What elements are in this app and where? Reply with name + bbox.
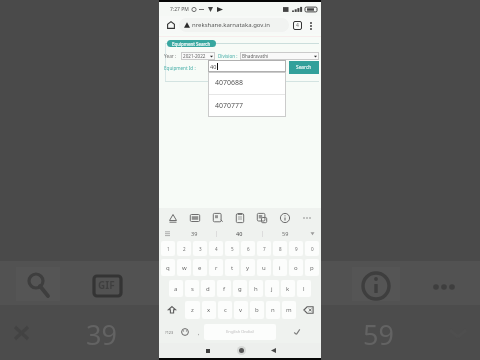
button[interactable]: x <box>202 301 216 319</box>
button[interactable]: 4 <box>209 241 223 256</box>
button[interactable]: v <box>234 301 248 319</box>
staticText: 2021-2022 <box>183 53 206 59</box>
button[interactable]: m <box>282 301 296 319</box>
button[interactable]: More <box>299 210 315 226</box>
staticText: h <box>254 285 258 293</box>
button[interactable]: Back <box>266 343 281 358</box>
button[interactable]: 2021-2022 <box>183 52 213 60</box>
button[interactable]: w <box>177 259 191 276</box>
button[interactable]: nrekshane.karnataka.gov.in <box>179 18 289 32</box>
button[interactable]: Bhadravathi <box>242 52 317 60</box>
button[interactable]: 4070777 <box>208 95 286 117</box>
button[interactable]: 5 <box>225 241 239 256</box>
button[interactable]: r <box>209 259 223 276</box>
staticText: i <box>279 264 281 272</box>
button[interactable]: More options <box>304 19 317 32</box>
staticText: a <box>174 285 178 293</box>
staticText: z <box>191 306 194 314</box>
staticText: p <box>310 264 314 272</box>
button[interactable]: Backspace <box>298 300 319 320</box>
button[interactable]: Settings <box>277 210 293 226</box>
staticText: u <box>262 264 266 272</box>
staticText: 3 <box>199 246 202 252</box>
button[interactable]: 0 <box>305 241 319 256</box>
button[interactable]: Shift <box>161 300 183 320</box>
staticText: 40 <box>236 230 243 237</box>
staticText: e <box>198 264 202 272</box>
button[interactable]: b <box>250 301 264 319</box>
button[interactable]: Clipboard <box>232 210 248 226</box>
staticText: f <box>223 285 226 293</box>
button[interactable]: j <box>265 280 279 297</box>
button[interactable]: GIF <box>187 210 203 226</box>
button[interactable]: t <box>225 259 239 276</box>
button[interactable]: Comma <box>193 321 204 343</box>
button[interactable]: s <box>185 280 199 297</box>
button[interactable]: q <box>161 259 175 276</box>
button[interactable]: Equipment Search <box>172 40 211 47</box>
button[interactable]: 8 <box>273 241 287 256</box>
button[interactable]: f <box>217 280 231 297</box>
staticText: 39 <box>86 316 117 353</box>
staticText: Bhadravathi <box>242 53 269 59</box>
button[interactable]: 6 <box>241 241 255 256</box>
button[interactable]: Search <box>289 61 319 74</box>
button[interactable]: u <box>257 259 271 276</box>
button[interactable]: English (India) <box>204 324 276 340</box>
button[interactable]: o <box>289 259 303 276</box>
button[interactable]: Recent apps <box>200 343 215 358</box>
button[interactable]: More suggestions <box>308 229 317 238</box>
button[interactable]: z <box>185 301 200 319</box>
staticText: g <box>238 285 242 293</box>
staticText: 0 <box>311 246 314 252</box>
button[interactable]: Voice search <box>165 210 181 226</box>
button[interactable]: Home <box>164 18 178 32</box>
staticText: , <box>198 329 200 336</box>
staticText: 6 <box>247 246 250 252</box>
staticText: 1 <box>167 246 170 252</box>
button[interactable]: 40 <box>217 227 262 240</box>
button[interactable]: 59 <box>263 227 308 240</box>
button[interactable]: ?123 <box>162 321 177 343</box>
button[interactable]: Translate <box>254 210 270 226</box>
button[interactable]: a <box>169 280 183 297</box>
button[interactable]: 3 <box>193 241 207 256</box>
staticText: English (India) <box>226 329 254 335</box>
button[interactable]: l <box>297 280 311 297</box>
button[interactable]: h <box>249 280 263 297</box>
button[interactable]: p <box>305 259 319 276</box>
button[interactable]: g <box>233 280 247 297</box>
staticText: 8 <box>279 246 282 252</box>
staticText: GIF <box>98 278 115 292</box>
button[interactable]: Home <box>234 343 249 358</box>
button[interactable]: Emoji <box>177 321 193 343</box>
button[interactable]: Open tabs <box>291 19 304 32</box>
staticText: ?123 <box>165 330 174 335</box>
button[interactable]: Enter <box>276 321 318 343</box>
button[interactable]: c <box>218 301 232 319</box>
button[interactable]: Stickers <box>210 210 226 226</box>
staticText: 59 <box>282 230 289 237</box>
staticText: Division : <box>218 53 238 59</box>
button[interactable]: 1 <box>161 241 175 256</box>
staticText: b <box>255 306 259 314</box>
button[interactable]: k <box>281 280 295 297</box>
button[interactable]: i <box>273 259 287 276</box>
staticText: 4070688 <box>215 78 244 88</box>
button[interactable]: n <box>266 301 280 319</box>
button[interactable]: e <box>193 259 207 276</box>
staticText: nrekshane.karnataka.gov.in <box>192 21 271 29</box>
button[interactable]: 2 <box>177 241 191 256</box>
button[interactable]: d <box>201 280 215 297</box>
staticText: s <box>191 285 194 293</box>
button[interactable]: y <box>241 259 255 276</box>
staticText: o <box>294 264 298 272</box>
button[interactable]: 39 <box>172 227 216 240</box>
button[interactable]: 7 <box>257 241 271 256</box>
staticText: 7 <box>263 246 266 252</box>
button[interactable]: 4070688 <box>208 72 286 94</box>
staticText: 2 <box>183 246 186 252</box>
staticText: 59 <box>363 316 394 353</box>
button[interactable]: 9 <box>289 241 303 256</box>
button[interactable]: Expand suggestions <box>163 229 172 238</box>
